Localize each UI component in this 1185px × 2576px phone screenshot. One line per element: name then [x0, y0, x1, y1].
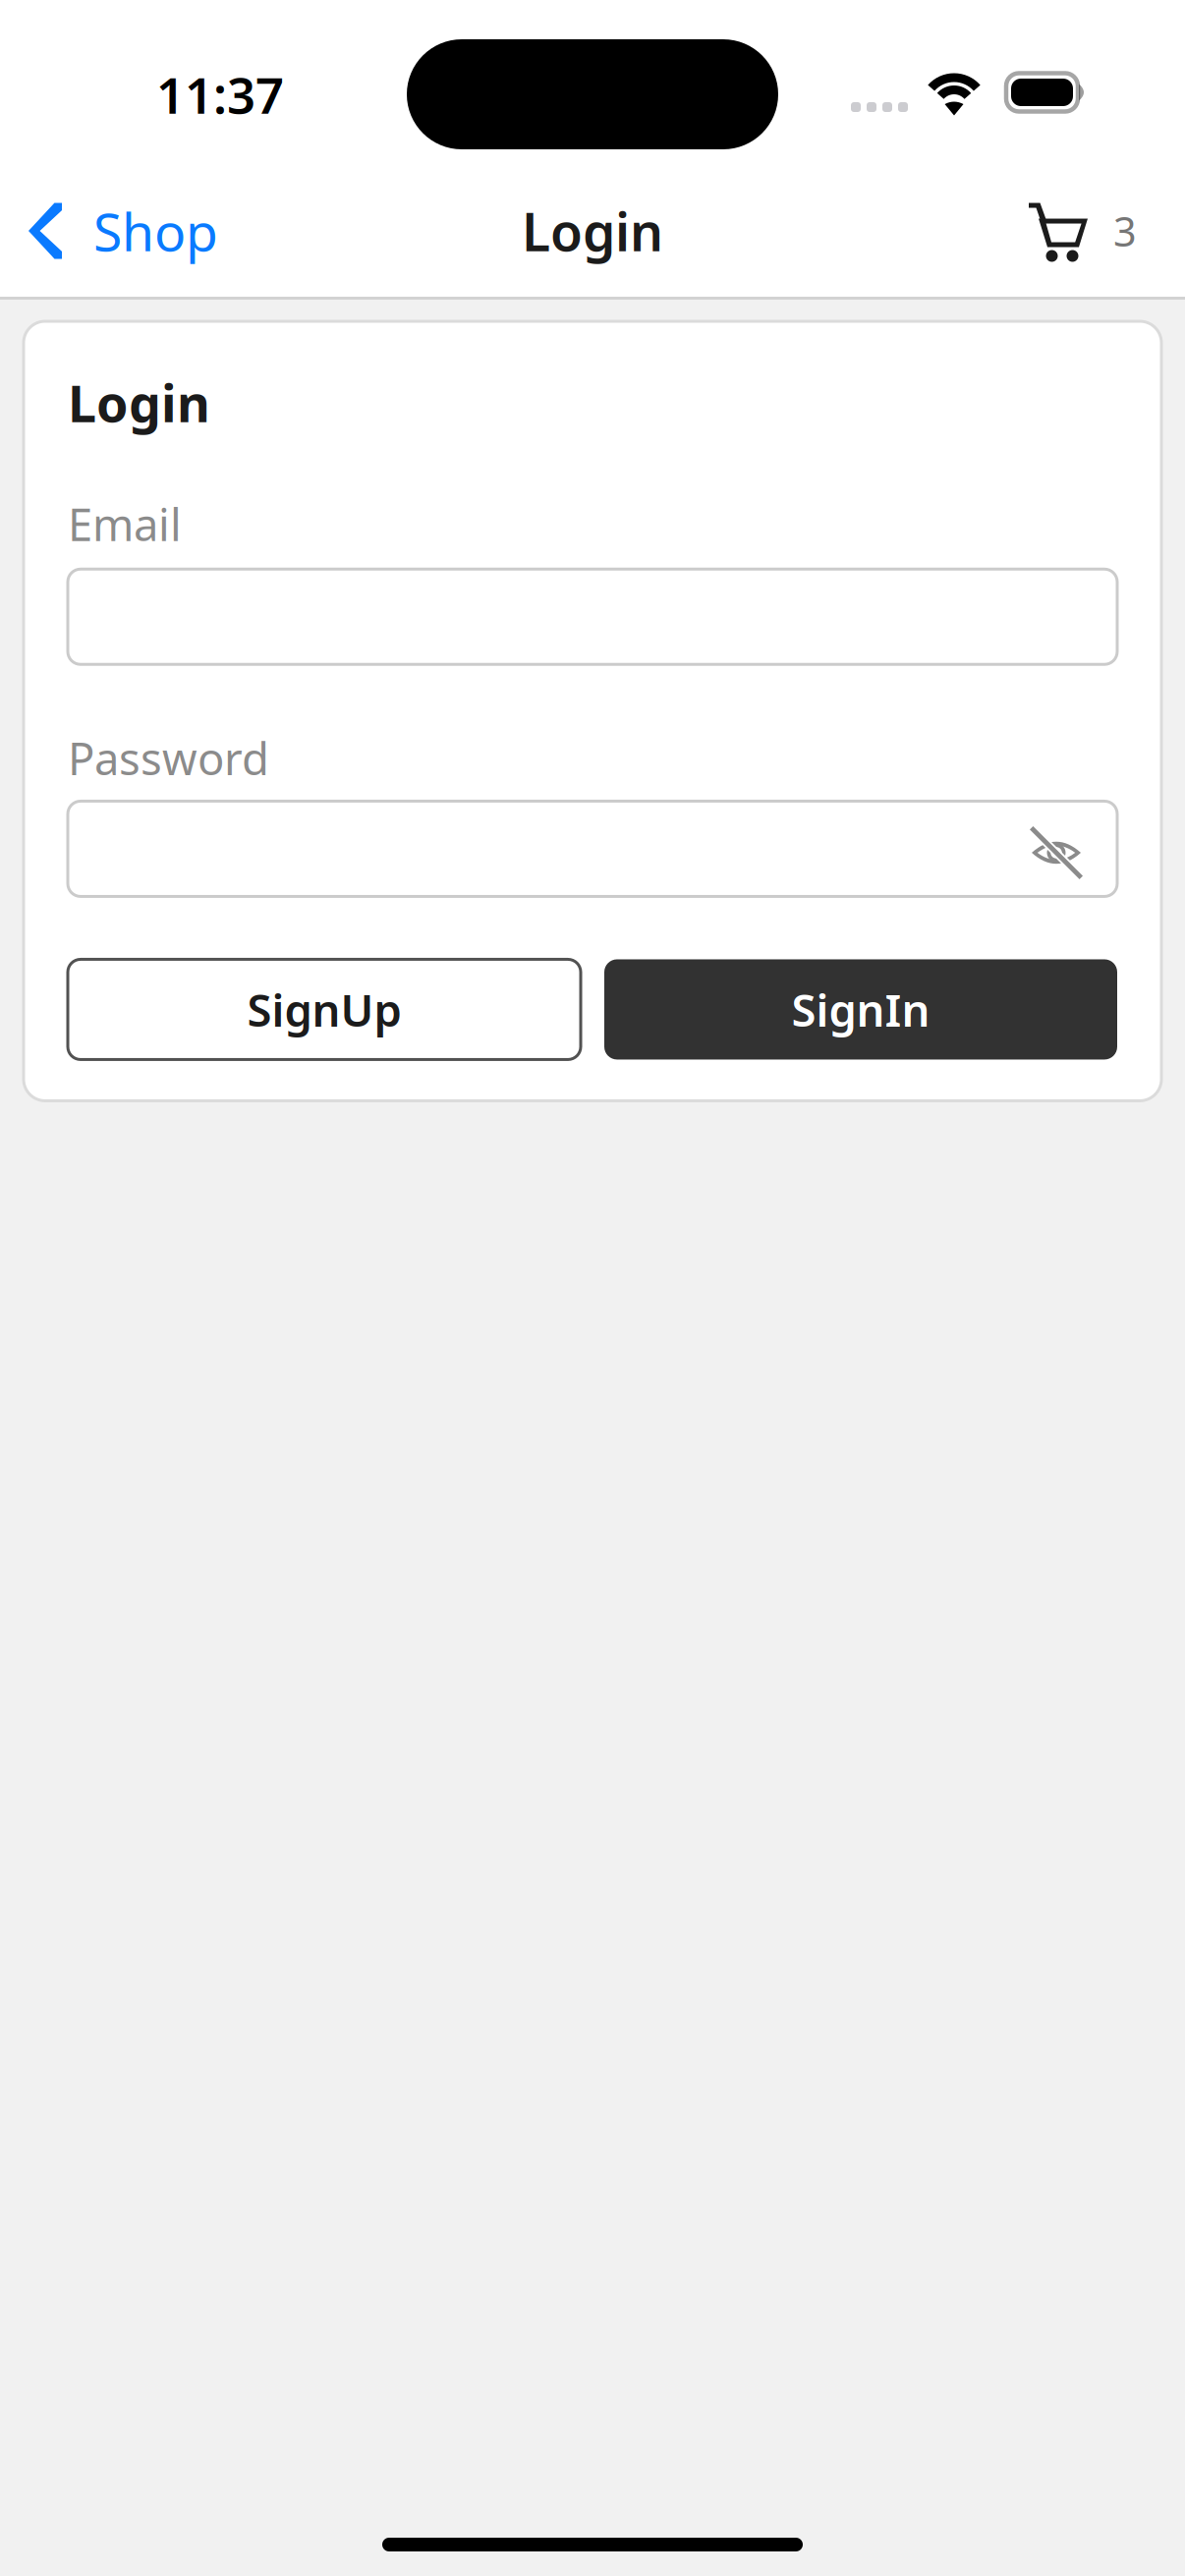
- staticText: Email: [68, 494, 182, 553]
- button[interactable]: SignUp: [68, 959, 581, 1060]
- staticText: Login: [522, 196, 663, 266]
- staticText: Shop: [93, 196, 218, 266]
- staticText: 3: [1113, 204, 1137, 258]
- button[interactable]: SignIn: [604, 959, 1117, 1060]
- staticText: SignUp: [247, 980, 401, 1039]
- button[interactable]: 3: [1005, 173, 1185, 297]
- staticText: 11:37: [156, 61, 284, 127]
- staticText: Login: [68, 368, 210, 436]
- staticText: Password: [68, 728, 269, 787]
- button[interactable]: Show password: [1031, 804, 1117, 894]
- staticText: SignIn: [791, 980, 930, 1039]
- button[interactable]: Shop: [0, 173, 242, 297]
